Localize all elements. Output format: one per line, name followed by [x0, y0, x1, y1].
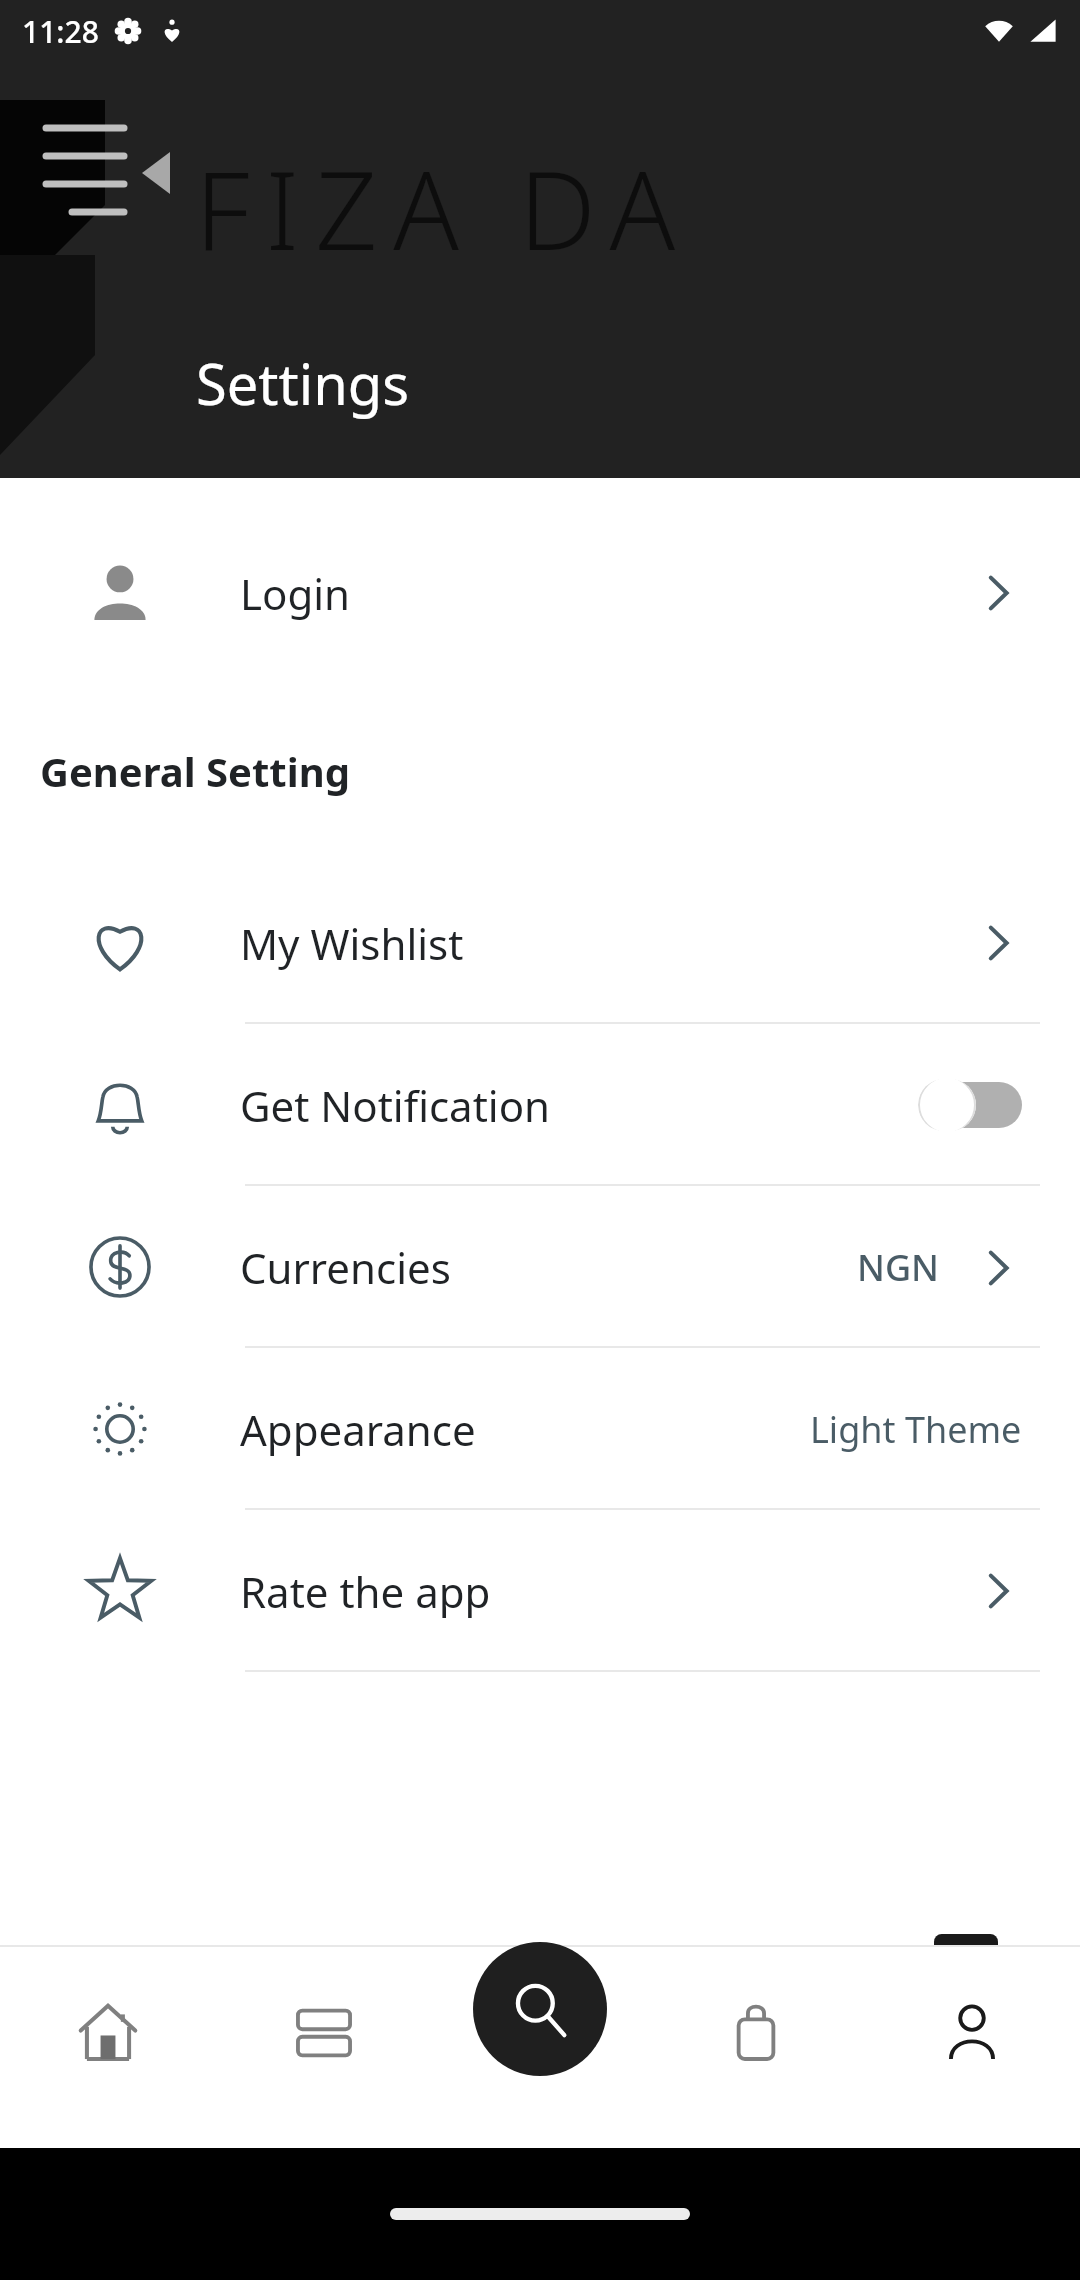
button[interactable]: Menu	[34, 112, 126, 184]
staticText: 11:28	[22, 11, 99, 52]
button[interactable]: Currencies	[0, 1186, 1080, 1348]
staticText: Appearance	[240, 1401, 476, 1458]
button[interactable]: Home	[0, 1976, 216, 2148]
button[interactable]: Categories	[216, 1976, 432, 2148]
staticText: Rate the app	[240, 1563, 491, 1620]
button[interactable]: Get Notification toggle	[918, 1079, 1022, 1131]
button[interactable]: Login	[0, 538, 1080, 648]
button[interactable]: Chat support	[893, 1893, 1039, 2039]
staticText: Login	[240, 565, 351, 622]
button[interactable]: Search	[473, 1942, 607, 2076]
staticText: Light Theme	[810, 1405, 1022, 1454]
button[interactable]: Rate the app	[0, 1510, 1080, 1672]
button[interactable]: Bag	[648, 1976, 864, 2148]
button[interactable]: Appearance	[0, 1348, 1080, 1510]
staticText: My Wishlist	[240, 915, 464, 972]
staticText: Get Notification	[240, 1077, 551, 1134]
staticText: FIZA DA	[195, 135, 692, 282]
staticText: Settings	[196, 345, 410, 421]
button[interactable]: Profile	[864, 1976, 1080, 2148]
staticText: Currencies	[240, 1239, 451, 1296]
staticText: General Setting	[40, 744, 350, 798]
staticText: NGN	[857, 1243, 940, 1292]
button[interactable]: Get Notification	[0, 1024, 1080, 1186]
button[interactable]: My Wishlist	[0, 862, 1080, 1024]
